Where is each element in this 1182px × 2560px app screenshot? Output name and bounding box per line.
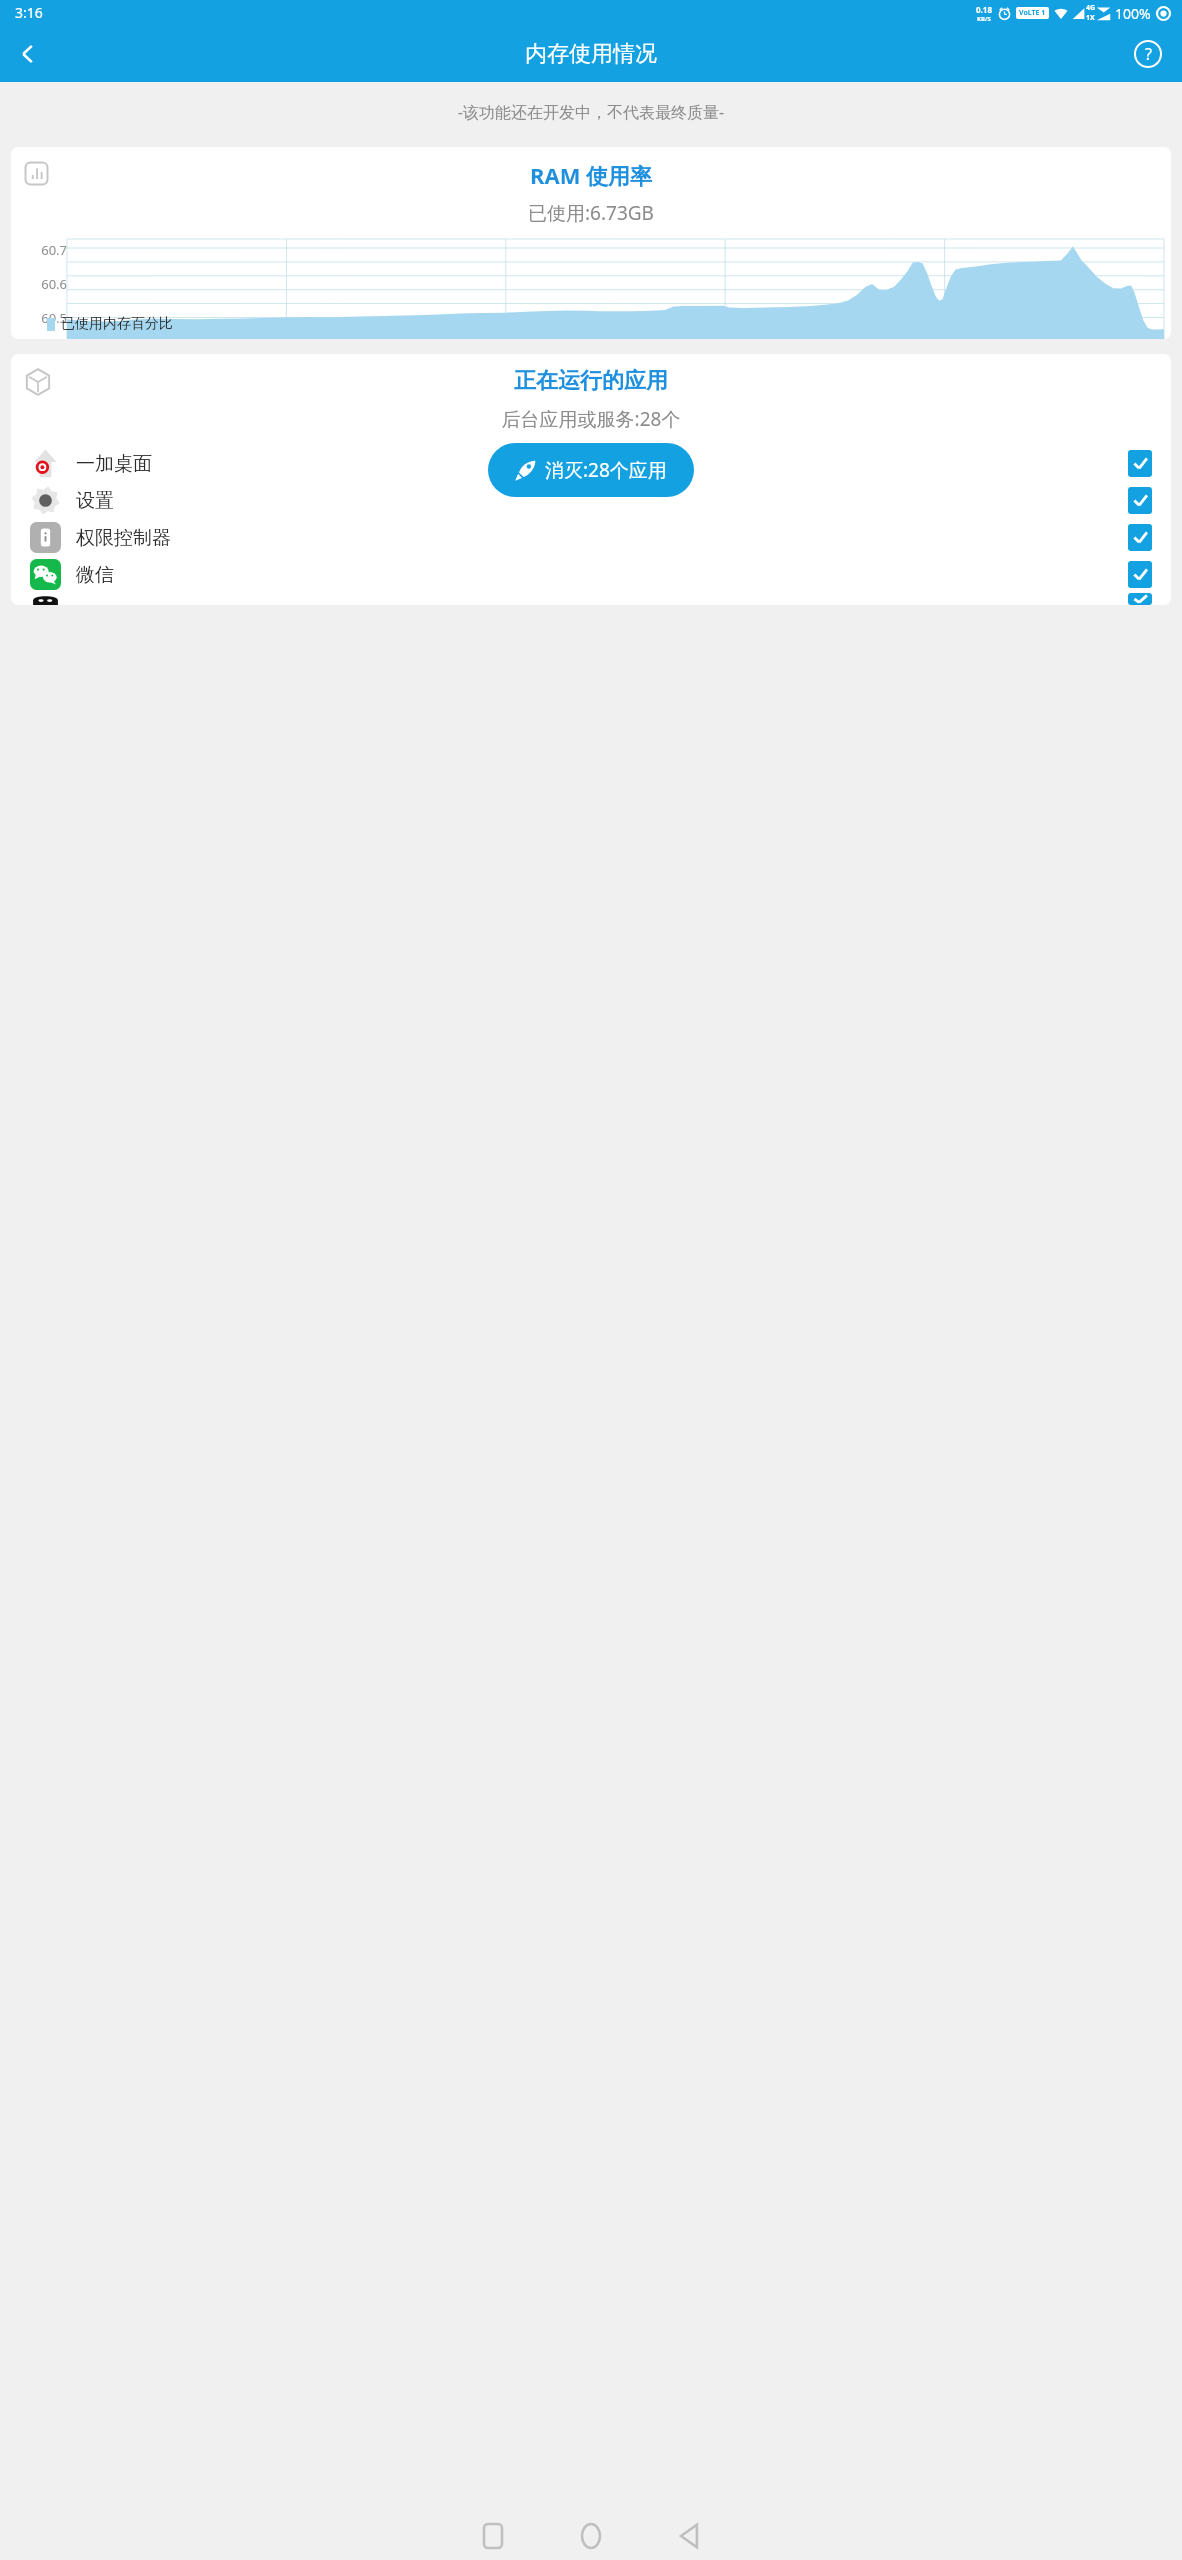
button[interactable]: Select 权限控制器 <box>1128 524 1152 551</box>
staticText: 已使用内存百分比 <box>61 315 173 333</box>
staticText: 后台应用或服务:28个 <box>11 406 1171 432</box>
staticText: 设置 <box>76 489 114 513</box>
button[interactable]: Home <box>542 2512 640 2560</box>
button[interactable]: Recent apps <box>444 2512 542 2560</box>
staticText: 正在运行的应用 <box>11 367 1171 395</box>
button[interactable]: 一加桌面 <box>11 445 1171 482</box>
button[interactable]: Select 微信 <box>1128 561 1152 588</box>
button[interactable]: Help <box>1123 29 1173 79</box>
staticText: 内存使用情况 <box>525 40 657 68</box>
staticText: RAM 使用率 <box>530 160 653 190</box>
button[interactable]: RAM 使用率 <box>11 147 1171 339</box>
button[interactable]: Back <box>640 2512 738 2560</box>
staticText: -该功能还在开发中，不代表最终质量- <box>0 101 1182 123</box>
staticText: 60.6 <box>26 275 67 293</box>
button[interactable]: 消灭:28个应用 <box>488 443 694 497</box>
staticText: 已使用:6.73GB <box>528 200 654 226</box>
staticText: 100% <box>1115 4 1151 23</box>
button[interactable]: Select 设置 <box>1128 487 1152 514</box>
staticText: 60.5 <box>26 309 67 327</box>
button[interactable]: Select <box>1128 593 1152 605</box>
button[interactable]: 权限控制器 <box>11 519 1171 556</box>
button[interactable]: 微信 <box>11 556 1171 593</box>
staticText: KB/S <box>977 15 991 23</box>
button[interactable]: Select 一加桌面 <box>1128 450 1152 477</box>
staticText: 微信 <box>76 563 114 587</box>
staticText: 消灭:28个应用 <box>545 457 667 483</box>
staticText: VoLTE 1 <box>1019 8 1046 18</box>
button[interactable]: 设置 <box>11 482 1171 519</box>
button[interactable]: Back <box>3 29 53 79</box>
staticText: 60.7 <box>26 241 67 259</box>
staticText: 一加桌面 <box>76 452 152 476</box>
staticText: 3:16 <box>15 3 43 22</box>
staticText: 权限控制器 <box>76 526 171 550</box>
staticText: 1X <box>1086 13 1095 23</box>
staticText: 4G <box>1086 3 1096 13</box>
staticText: 0.18 <box>976 4 992 15</box>
button[interactable]: Select <box>11 593 1171 605</box>
staticText: ? <box>1145 43 1152 65</box>
